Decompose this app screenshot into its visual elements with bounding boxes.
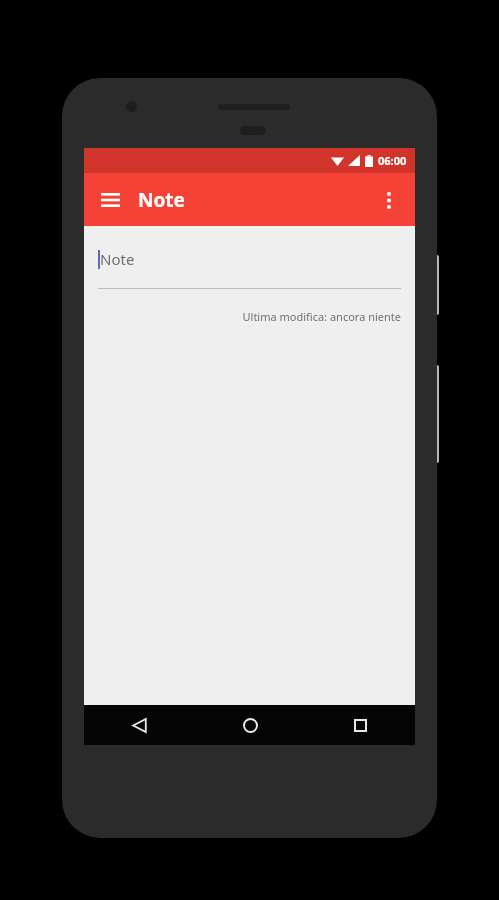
staticText: Note: [100, 249, 135, 269]
staticText: Note: [138, 187, 185, 213]
staticText: Ultima modifica: ancora niente: [84, 309, 401, 324]
button[interactable]: Home: [195, 705, 305, 745]
button[interactable]: More options: [369, 180, 409, 220]
button[interactable]: Note: [98, 243, 401, 275]
button[interactable]: Recent apps: [305, 705, 415, 745]
staticText: 06:00: [378, 153, 407, 168]
button[interactable]: Back: [84, 705, 195, 745]
button[interactable]: Open navigation menu: [90, 180, 130, 220]
